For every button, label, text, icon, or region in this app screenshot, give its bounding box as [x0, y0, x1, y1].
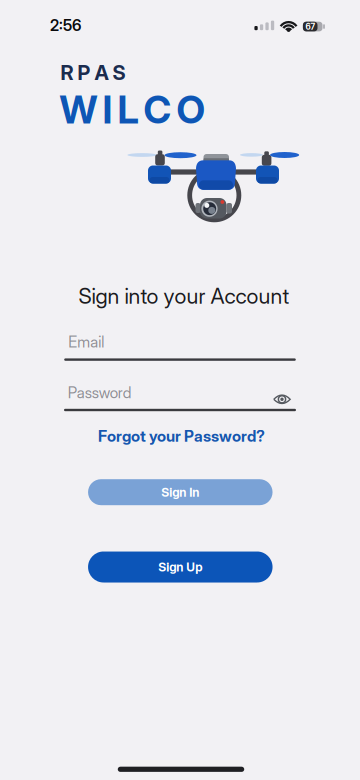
staticText: R P A S: [60, 61, 125, 85]
staticText: Forgot your Password?: [98, 427, 265, 445]
staticText: Sign Up: [158, 560, 202, 574]
button[interactable]: Forgot your Password?: [98, 427, 265, 445]
staticText: Sign into your Account: [78, 283, 289, 309]
staticText: Password: [68, 383, 132, 402]
staticText: Email: [68, 333, 104, 351]
staticText: Sign In: [161, 485, 199, 500]
staticText: 67: [305, 21, 315, 32]
button[interactable]: Email: [64, 332, 296, 361]
staticText: W I L C O: [59, 86, 205, 133]
button[interactable]: Password: [64, 385, 296, 411]
button[interactable]: Sign In: [88, 479, 273, 505]
button[interactable]: Show password: [273, 393, 291, 405]
button[interactable]: Sign Up: [88, 551, 273, 582]
staticText: 2:56: [50, 16, 81, 35]
